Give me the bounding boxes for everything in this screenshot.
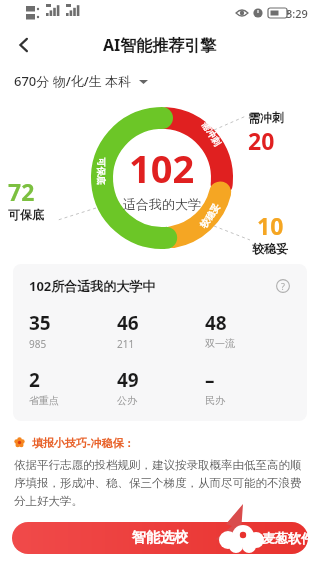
staticText: 双一流 — [205, 337, 235, 350]
staticText: 依据平行志愿的投档规则，建议按录取概率由低至高的顺序填报，形成冲、稳、保三个梯度… — [14, 458, 306, 509]
staticText: 公办 — [117, 394, 137, 407]
staticText: 49 — [117, 367, 139, 393]
staticText: 需冲刺 — [248, 110, 284, 125]
button[interactable]: 智能选校 — [12, 522, 308, 554]
staticText: 2 — [29, 367, 40, 393]
staticText: 需冲刺 — [200, 119, 223, 148]
staticText: – — [205, 367, 215, 393]
staticText: 46 — [117, 310, 139, 336]
staticText: 72 — [8, 176, 35, 207]
staticText: AI智能推荐引擎 — [103, 34, 217, 56]
staticText: 10 — [257, 210, 284, 241]
button[interactable]: 670分 物/化/生 本科 — [14, 72, 148, 90]
staticText: 可保底 — [8, 207, 44, 222]
staticText: 35 — [29, 310, 51, 336]
staticText: 填报小技巧-冲稳保： — [32, 435, 135, 450]
staticText: 670分 物/化/生 本科 — [14, 72, 132, 90]
button[interactable]: Back — [6, 27, 42, 63]
staticText: 民办 — [205, 394, 225, 407]
staticText: 211 — [117, 337, 135, 351]
staticText: 智能选校 — [132, 529, 188, 547]
staticText: 适合我的大学 — [123, 196, 201, 212]
staticText: 102 — [129, 142, 195, 194]
staticText: ? — [281, 280, 285, 292]
staticText: 较稳妥 — [252, 241, 288, 256]
button[interactable]: 帮助 — [273, 276, 293, 296]
staticText: 可保底 — [96, 158, 107, 185]
staticText: 3:29 — [286, 6, 308, 21]
staticText: 较稳妥 — [197, 201, 222, 230]
staticText: 麦葱软件 — [262, 530, 314, 546]
staticText: 省重点 — [29, 394, 59, 407]
staticText: 20 — [248, 125, 275, 156]
staticText: 48 — [205, 310, 227, 336]
staticText: 102所合适我的大学中 — [29, 277, 156, 295]
staticText: 985 — [29, 337, 47, 351]
